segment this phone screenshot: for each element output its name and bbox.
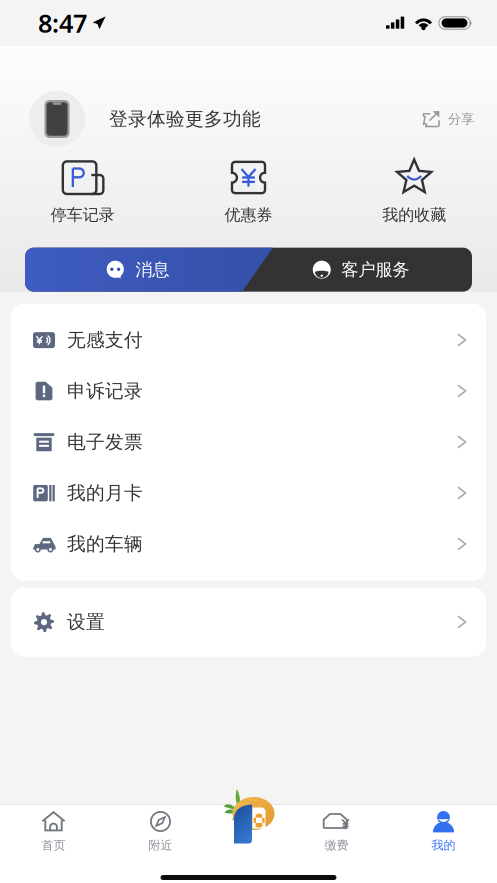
button[interactable]: 电子发票 xyxy=(11,417,486,468)
button[interactable]: 缴费 xyxy=(283,811,390,853)
staticText: 我的月卡 xyxy=(67,482,143,505)
staticText: 消息 xyxy=(135,259,169,280)
staticText: 登录体验更多功能 xyxy=(109,107,261,130)
button[interactable]: 我的收藏 xyxy=(331,160,497,225)
staticText: 缴费 xyxy=(324,838,348,853)
staticText: 优惠券 xyxy=(224,205,272,225)
staticText: 设置 xyxy=(67,611,105,634)
staticText: 客户服务 xyxy=(341,259,409,280)
staticText: 首页 xyxy=(41,838,65,853)
button[interactable]: 无感支付 xyxy=(11,315,486,366)
button[interactable]: 设置 xyxy=(11,597,486,648)
staticText: 我的 xyxy=(431,838,455,853)
staticText: 8:47 xyxy=(38,6,87,40)
button[interactable]: 附近 xyxy=(107,811,214,853)
button[interactable]: 停车记录 xyxy=(0,160,166,225)
button[interactable]: Parking xyxy=(223,788,274,844)
button[interactable]: 申诉记录 xyxy=(11,366,486,417)
button[interactable]: 客户服务 xyxy=(248,248,472,292)
button[interactable]: 优惠券 xyxy=(166,160,331,225)
staticText: 我的收藏 xyxy=(382,205,446,225)
staticText: 无感支付 xyxy=(67,329,143,352)
staticText: 停车记录 xyxy=(51,205,115,225)
button[interactable]: 我的 xyxy=(390,811,497,853)
button[interactable]: 分享 xyxy=(421,110,474,128)
staticText: 分享 xyxy=(448,111,474,127)
button[interactable]: 我的车辆 xyxy=(11,519,486,570)
staticText: 电子发票 xyxy=(67,431,143,454)
staticText: 附近 xyxy=(148,838,172,853)
staticText: 我的车辆 xyxy=(67,533,143,556)
button[interactable]: 首页 xyxy=(0,811,107,853)
staticText: 申诉记录 xyxy=(67,380,143,403)
button[interactable]: 我的月卡 xyxy=(11,468,486,519)
button[interactable]: 消息 xyxy=(25,248,248,292)
